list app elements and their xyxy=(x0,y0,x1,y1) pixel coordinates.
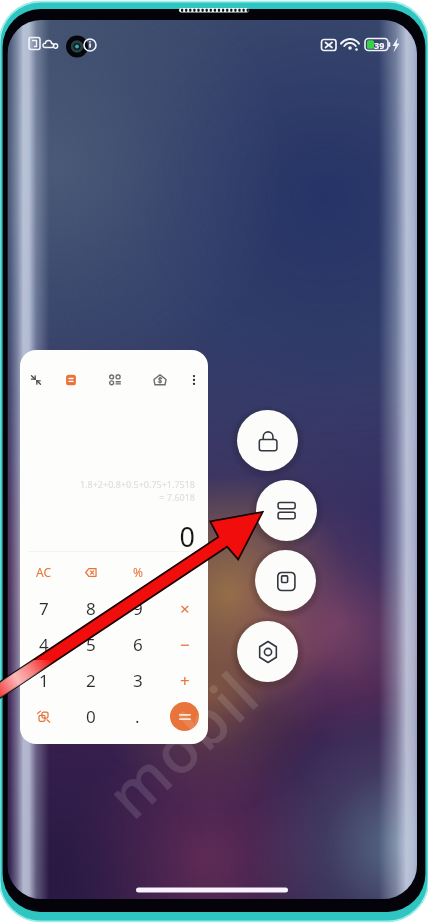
button[interactable]: Mortgage xyxy=(153,373,167,387)
staticText: − xyxy=(180,633,190,656)
staticText: 1 xyxy=(39,669,49,692)
button[interactable]: 8 xyxy=(67,590,114,626)
button[interactable]: % xyxy=(114,554,161,590)
staticText: 0 xyxy=(20,518,195,555)
button[interactable]: 2 xyxy=(67,662,114,698)
button[interactable]: + xyxy=(161,662,208,698)
button[interactable]: 9 xyxy=(114,590,161,626)
button[interactable]: Collapse xyxy=(29,373,43,387)
staticText: . xyxy=(135,705,140,728)
button[interactable]: − xyxy=(161,626,208,662)
button[interactable]: × xyxy=(161,590,208,626)
button[interactable]: Settings xyxy=(237,621,298,682)
button[interactable]: 3 xyxy=(114,662,161,698)
staticText: 1.8+2+0.8+0.5+0.75+1.7518 xyxy=(20,478,195,490)
button[interactable]: 0 xyxy=(67,698,114,734)
staticText: 2 xyxy=(86,669,96,692)
button[interactable]: 1 xyxy=(20,662,67,698)
staticText: AC xyxy=(36,564,52,580)
button[interactable]: . xyxy=(114,698,161,734)
button[interactable]: Converter xyxy=(108,373,122,387)
staticText: 0 xyxy=(86,705,96,728)
button[interactable]: Scientific xyxy=(20,698,67,734)
staticText: 4 xyxy=(39,633,49,656)
button[interactable]: Equals xyxy=(170,702,199,731)
button[interactable]: 7 xyxy=(20,590,67,626)
button[interactable]: Lock xyxy=(237,410,298,471)
other: Backspace xyxy=(85,568,97,577)
staticText: + xyxy=(180,669,190,692)
button[interactable]: 5 xyxy=(67,626,114,662)
button[interactable]: AC xyxy=(20,554,67,590)
button[interactable]: Calculator xyxy=(64,373,78,387)
button[interactable]: Backspace xyxy=(67,554,114,590)
button[interactable]: ÷ xyxy=(161,554,208,590)
staticText: % xyxy=(133,564,143,580)
button[interactable]: More options xyxy=(187,373,201,387)
staticText: 3 xyxy=(133,669,143,692)
staticText: 39 xyxy=(374,39,385,51)
staticText: = 7.6018 xyxy=(20,491,195,503)
staticText: 7 xyxy=(39,597,49,620)
staticText: 9 xyxy=(133,597,143,620)
button[interactable]: 4 xyxy=(20,626,67,662)
button[interactable]: Split screen xyxy=(256,480,317,541)
staticText: 8 xyxy=(86,597,96,620)
staticText: 5 xyxy=(86,633,96,656)
staticText: × xyxy=(180,597,190,620)
staticText: mobil xyxy=(88,652,276,835)
button[interactable]: Picture in picture xyxy=(255,550,316,611)
button[interactable]: 6 xyxy=(114,626,161,662)
staticText: ÷ xyxy=(181,564,188,580)
staticText: 6 xyxy=(133,633,143,656)
